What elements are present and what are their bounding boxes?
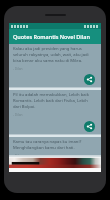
staticText: Quotes Romantis Novel Dilan	[13, 33, 90, 40]
staticText: - Dilan	[13, 154, 23, 155]
staticText: Pil itu adalah memabukkan, Lebih baik No…	[13, 92, 97, 98]
staticText: dari Bolpoi.	[13, 104, 36, 110]
staticText: bisa benar aku sama naku di Milea.	[13, 58, 83, 64]
staticText: Kalau aku jadi presiden yang harus memim…	[13, 46, 97, 52]
button[interactable]: Kamu tau caranya napas ku imani? Selepan…	[9, 137, 101, 155]
button[interactable]: Share	[84, 121, 95, 132]
button[interactable]: Pil itu adalah memabukkan, Lebih baik No…	[9, 90, 101, 134]
button[interactable]: Kalau aku jadi presiden yang harus memim…	[9, 44, 101, 87]
button[interactable]: Quotes Romantis Novel Dilan	[9, 29, 101, 44]
button[interactable]	[9, 155, 101, 172]
staticText: Menghilangkan kamu dari hati.	[13, 145, 75, 151]
staticText: - Dilan	[13, 113, 23, 117]
button[interactable]: Share	[84, 74, 95, 85]
staticText: seluruh rakyatnya, udah, wait, aku jadi	[13, 52, 89, 58]
staticText: - Dilan	[13, 67, 23, 71]
staticText: Romantis. Lebih baik dari Fisika, Lebih …	[13, 98, 97, 104]
staticText: Kamu tau caranya napas ku imani? Selepan…	[13, 139, 97, 145]
